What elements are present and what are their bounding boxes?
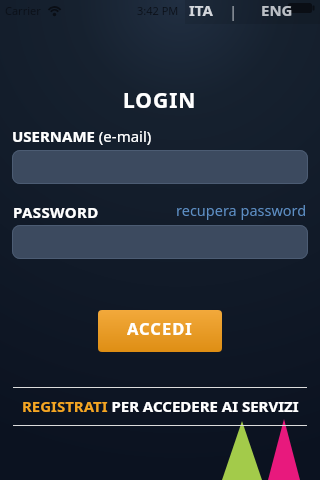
- staticText: LOGIN: [123, 86, 197, 115]
- staticText: REGISTRATI PER ACCEDERE AI SERVIZI: [22, 396, 299, 414]
- button[interactable]: ENG: [259, 0, 294, 21]
- staticText: PASSWORD: [13, 202, 99, 222]
- staticText: recupera password: [176, 200, 307, 220]
- button[interactable]: ACCEDI: [98, 310, 222, 352]
- button[interactable]: [12, 225, 308, 259]
- button[interactable]: ITA: [184, 0, 217, 21]
- staticText: Carrier: [5, 3, 41, 18]
- staticText: ENG: [261, 0, 293, 20]
- staticText: 3:42 PM: [137, 3, 179, 18]
- staticText: ITA: [189, 0, 213, 20]
- button[interactable]: REGISTRATI PER ACCEDERE AI SERVIZI: [0, 396, 320, 414]
- button[interactable]: [12, 150, 308, 184]
- staticText: ACCEDI: [127, 317, 193, 339]
- staticText: |: [229, 1, 238, 21]
- staticText: USERNAME (e-mail): [12, 126, 152, 146]
- button[interactable]: recupera password: [170, 199, 310, 221]
